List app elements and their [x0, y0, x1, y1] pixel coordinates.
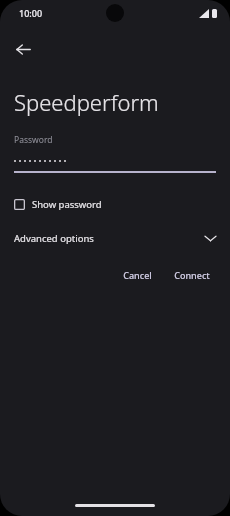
button[interactable]: Cancel [114, 264, 161, 286]
staticText: Connect [174, 269, 210, 281]
button[interactable]: Show password [10, 193, 110, 216]
button[interactable]: Advanced options [0, 227, 230, 250]
button[interactable] [14, 155, 216, 173]
staticText: Cancel [123, 269, 152, 281]
staticText: 10:00 [19, 7, 43, 19]
staticText: Password [14, 134, 53, 146]
staticText: Speedperform [14, 87, 159, 117]
button[interactable]: Connect [165, 264, 219, 286]
staticText: Advanced options [14, 232, 94, 245]
staticText: Show password [32, 198, 102, 211]
button[interactable]: Back [6, 32, 40, 66]
